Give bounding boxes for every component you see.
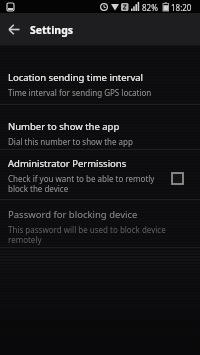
staticText: 18:20	[171, 2, 192, 13]
staticText: 82%	[142, 2, 158, 13]
staticText: Check if you want to be able to remotly …	[8, 173, 155, 195]
staticText: Number to show the app	[8, 120, 120, 133]
staticText: Settings	[30, 23, 74, 37]
staticText: This password will be used to block devi…	[8, 224, 166, 246]
staticText: Location sending time interval	[8, 71, 144, 84]
staticText: Dial this number to show the app	[8, 136, 133, 147]
button[interactable]: Settings	[0, 13, 200, 46]
button[interactable]: Password for blocking device	[0, 200, 200, 246]
button[interactable]: Number to show the app	[0, 105, 200, 149]
staticText: Administrator Permissions	[8, 157, 127, 170]
staticText: Time interval for sending GPS location	[8, 87, 152, 98]
staticText: Password for blocking device	[8, 208, 138, 221]
button[interactable]: Location sending time interval	[0, 60, 200, 104]
button[interactable]: Administrator Permissions	[0, 150, 200, 199]
